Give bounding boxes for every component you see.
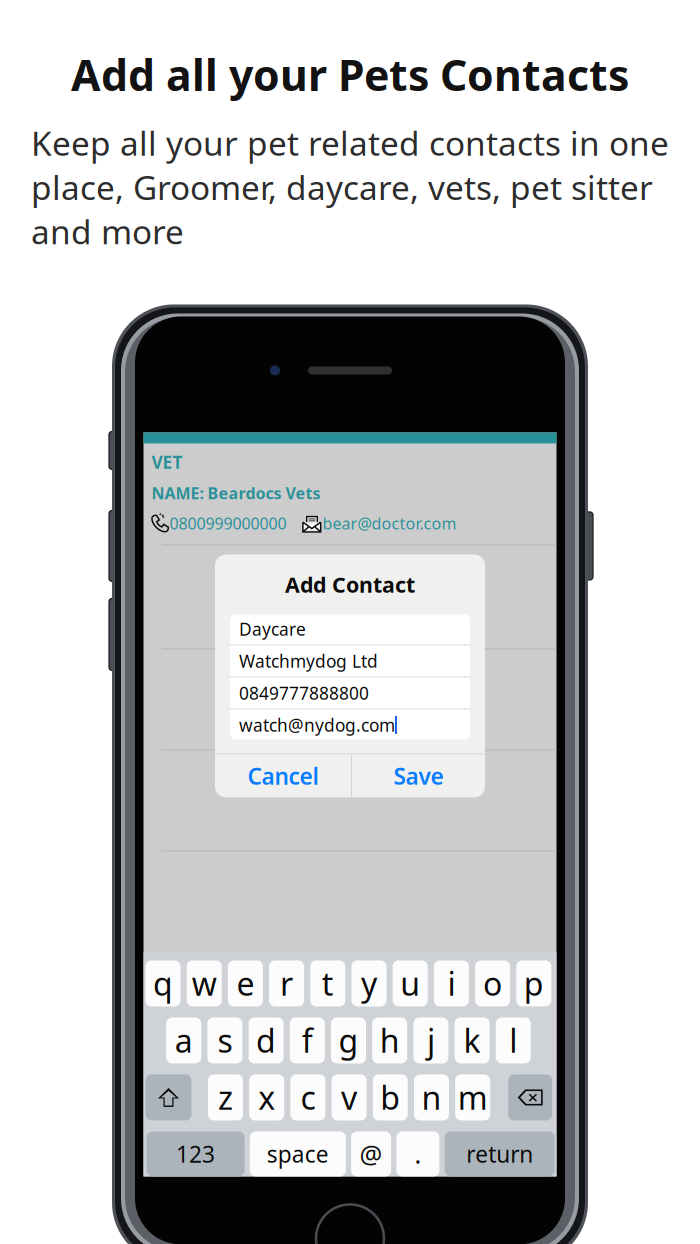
staticText: . — [414, 1137, 421, 1171]
button[interactable]: w — [187, 960, 222, 1006]
staticText: z — [218, 1076, 233, 1119]
staticText: p — [524, 962, 544, 1005]
staticText: Cancel — [247, 761, 318, 791]
button[interactable]: o — [475, 960, 510, 1006]
staticText: w — [192, 962, 217, 1005]
button[interactable]: m — [455, 1074, 490, 1120]
button[interactable]: a — [166, 1017, 201, 1063]
button[interactable]: i — [434, 960, 469, 1006]
staticText: Add Contact — [285, 570, 415, 599]
button[interactable]: @ — [351, 1131, 391, 1176]
staticText: j — [427, 1019, 435, 1062]
button[interactable]: k — [455, 1017, 490, 1063]
staticText: v — [341, 1076, 357, 1119]
button[interactable]: h — [372, 1017, 407, 1063]
staticText: watch@nydog.com — [239, 713, 395, 736]
button[interactable]: x — [249, 1074, 284, 1120]
button[interactable]: e — [228, 960, 263, 1006]
staticText: 0849777888800 — [239, 681, 369, 704]
button[interactable]: v — [332, 1074, 367, 1120]
staticText: i — [447, 962, 455, 1005]
staticText: q — [153, 962, 173, 1005]
staticText: a — [175, 1019, 193, 1062]
staticText: x — [258, 1076, 275, 1119]
staticText: c — [300, 1076, 315, 1119]
staticText: e — [236, 962, 254, 1005]
staticText: h — [380, 1019, 400, 1062]
button[interactable]: t — [310, 960, 345, 1006]
button[interactable]: c — [290, 1074, 325, 1120]
staticText: @ — [360, 1137, 383, 1171]
staticText: 123 — [176, 1139, 215, 1169]
staticText: g — [338, 1019, 358, 1062]
staticText: u — [400, 962, 420, 1005]
button[interactable]: y — [351, 960, 386, 1006]
staticText: k — [464, 1019, 481, 1062]
button[interactable]: Save — [352, 754, 485, 797]
staticText: f — [302, 1019, 313, 1062]
staticText: s — [217, 1019, 232, 1062]
button[interactable]: Delete — [508, 1074, 552, 1120]
button[interactable]: z — [208, 1074, 243, 1120]
staticText: 0800999000000 — [169, 513, 286, 534]
staticText: b — [380, 1076, 400, 1119]
staticText: Save — [393, 761, 443, 791]
button[interactable]: return — [445, 1131, 555, 1176]
button[interactable]: Shift — [145, 1074, 191, 1120]
staticText: d — [256, 1019, 276, 1062]
button[interactable]: n — [414, 1074, 449, 1120]
button[interactable]: p — [516, 960, 551, 1006]
button[interactable]: l — [496, 1017, 531, 1063]
staticText: l — [509, 1019, 517, 1062]
button[interactable]: q — [145, 960, 180, 1006]
button[interactable]: space — [250, 1131, 346, 1176]
staticText: space — [267, 1139, 329, 1169]
staticText: m — [458, 1076, 488, 1119]
button[interactable]: r — [269, 960, 304, 1006]
staticText: VET — [151, 450, 182, 473]
button[interactable]: s — [207, 1017, 242, 1063]
staticText: Watchmydog Ltd — [239, 649, 378, 672]
button[interactable]: d — [249, 1017, 284, 1063]
button[interactable]: 123 — [146, 1131, 244, 1176]
button[interactable]: g — [331, 1017, 366, 1063]
staticText: Daycare — [239, 617, 306, 640]
staticText: r — [280, 962, 293, 1005]
staticText: o — [483, 962, 502, 1005]
button[interactable]: u — [393, 960, 428, 1006]
staticText: Add all your Pets Contacts — [71, 46, 629, 103]
button[interactable]: b — [373, 1074, 408, 1120]
staticText: y — [361, 962, 377, 1005]
staticText: n — [421, 1076, 441, 1119]
staticText: bear@doctor.com — [322, 513, 456, 534]
button[interactable]: Cancel — [215, 754, 351, 797]
button[interactable]: f — [290, 1017, 325, 1063]
staticText: NAME: Beardocs Vets — [151, 482, 320, 504]
staticText: t — [322, 962, 334, 1005]
staticText: return — [466, 1139, 533, 1169]
staticText: Keep all your pet related contacts in on… — [31, 121, 669, 253]
button[interactable]: . — [396, 1131, 439, 1176]
button[interactable]: j — [413, 1017, 448, 1063]
